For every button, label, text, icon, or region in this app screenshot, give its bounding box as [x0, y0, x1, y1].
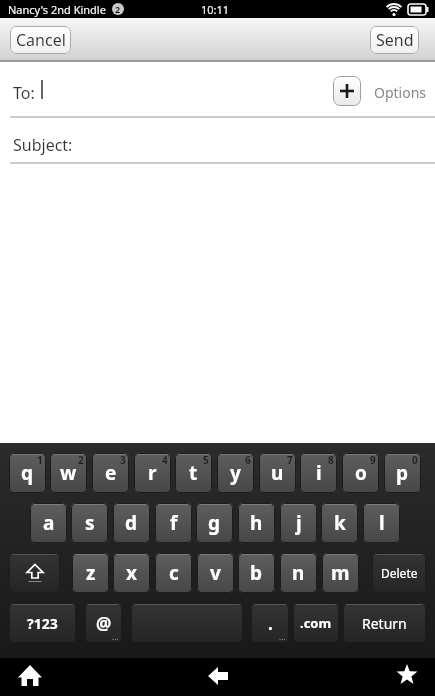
- button[interactable]: w: [50, 453, 87, 493]
- staticText: y: [230, 460, 241, 486]
- button[interactable]: Delete: [372, 553, 426, 593]
- staticText: d: [125, 510, 138, 536]
- staticText: w: [60, 460, 77, 486]
- staticText: Nancy's 2nd Kindle: [8, 2, 106, 17]
- staticText: o: [355, 460, 367, 486]
- staticText: 5: [203, 453, 209, 467]
- staticText: ?123: [27, 614, 58, 633]
- button[interactable]: t: [175, 453, 212, 493]
- button[interactable]: c: [155, 553, 192, 593]
- button[interactable]: b: [238, 553, 275, 593]
- button[interactable]: g: [196, 503, 233, 543]
- button[interactable]: y: [217, 453, 254, 493]
- staticText: i: [316, 460, 322, 486]
- button[interactable]: a: [30, 503, 67, 543]
- staticText: 3: [120, 453, 126, 467]
- staticText: Cancel: [16, 29, 66, 51]
- button[interactable]: u: [259, 453, 296, 493]
- button[interactable]: .: [251, 603, 289, 643]
- staticText: .com: [300, 614, 332, 632]
- staticText: s: [85, 510, 95, 536]
- button[interactable]: [387, 656, 427, 694]
- button[interactable]: n: [280, 553, 317, 593]
- button[interactable]: [333, 76, 361, 106]
- staticText: e: [105, 460, 117, 486]
- staticText: Send: [376, 29, 414, 51]
- button[interactable]: Send: [370, 26, 419, 54]
- staticText: j: [296, 510, 302, 536]
- staticText: 8: [328, 453, 334, 467]
- staticText: r: [148, 460, 157, 486]
- staticText: 2: [115, 3, 121, 15]
- button[interactable]: [12, 658, 52, 696]
- button[interactable]: j: [280, 503, 317, 543]
- staticText: m: [331, 560, 350, 586]
- staticText: h: [250, 510, 263, 536]
- staticText: l: [379, 510, 385, 536]
- staticText: n: [292, 560, 305, 586]
- staticText: a: [43, 510, 55, 536]
- staticText: 9: [370, 453, 376, 467]
- staticText: Subject:: [13, 134, 73, 156]
- button[interactable]: x: [113, 553, 150, 593]
- staticText: Return: [362, 614, 407, 633]
- staticText: t: [189, 460, 198, 486]
- staticText: @: [96, 612, 112, 635]
- staticText: 1: [37, 453, 43, 467]
- button[interactable]: e: [92, 453, 129, 493]
- staticText: x: [126, 560, 137, 586]
- staticText: 6: [245, 453, 251, 467]
- staticText: ...: [279, 631, 286, 642]
- button[interactable]: Cancel: [10, 26, 71, 54]
- staticText: b: [250, 560, 263, 586]
- staticText: k: [334, 510, 346, 536]
- staticText: 2: [78, 453, 84, 467]
- staticText: 10:11: [201, 2, 230, 17]
- staticText: Delete: [381, 565, 418, 581]
- button[interactable]: Return: [343, 603, 426, 643]
- button[interactable]: ?123: [9, 603, 76, 643]
- button[interactable]: @: [85, 603, 122, 643]
- staticText: c: [169, 560, 179, 586]
- staticText: v: [210, 560, 221, 586]
- staticText: p: [396, 460, 409, 486]
- staticText: u: [271, 460, 284, 486]
- staticText: f: [170, 510, 178, 536]
- button[interactable]: [9, 553, 60, 593]
- button[interactable]: [131, 603, 243, 643]
- staticText: 4: [162, 453, 168, 467]
- button[interactable]: h: [238, 503, 275, 543]
- staticText: 0: [412, 453, 418, 467]
- staticText: To:: [13, 82, 35, 104]
- button[interactable]: f: [155, 503, 192, 543]
- staticText: ...: [112, 631, 119, 642]
- button[interactable]: i: [300, 453, 337, 493]
- button[interactable]: v: [197, 553, 234, 593]
- button[interactable]: Options: [374, 83, 427, 102]
- button[interactable]: s: [71, 503, 108, 543]
- button[interactable]: k: [321, 503, 358, 543]
- staticText: g: [208, 510, 221, 536]
- button[interactable]: o: [342, 453, 379, 493]
- button[interactable]: p: [384, 453, 421, 493]
- button[interactable]: .com: [293, 603, 339, 643]
- button[interactable]: l: [363, 503, 400, 543]
- button[interactable]: r: [134, 453, 171, 493]
- button[interactable]: m: [322, 553, 359, 593]
- button[interactable]: d: [113, 503, 150, 543]
- staticText: .: [268, 612, 273, 635]
- staticText: q: [21, 460, 34, 486]
- staticText: z: [86, 560, 96, 586]
- staticText: 7: [287, 453, 293, 467]
- button[interactable]: q: [9, 453, 46, 493]
- button[interactable]: z: [72, 553, 109, 593]
- button[interactable]: [198, 658, 238, 696]
